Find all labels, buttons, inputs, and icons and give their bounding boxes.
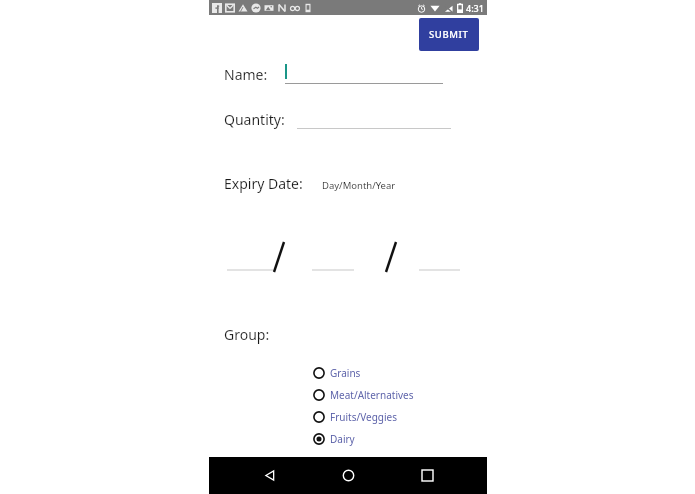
staticText: Name: [224,65,268,84]
staticText: Day/Month/Year [322,179,396,192]
button[interactable] [419,239,460,273]
staticText: Fruits/Veggies [330,410,397,424]
staticText: Dairy [330,432,355,446]
button[interactable]: Fruits/Veggies [209,406,487,428]
button[interactable]: Dairy [209,428,487,450]
button[interactable]: Home [329,457,367,494]
button[interactable]: SUBMIT [419,18,479,51]
staticText: Meat/Alternatives [330,388,414,402]
button[interactable]: Meat/Alternatives [209,384,487,406]
button[interactable] [227,239,273,273]
staticText: Quantity: [224,110,285,129]
staticText: 4:31 [466,2,484,14]
staticText: Expiry Date: [224,174,303,193]
button[interactable]: Grains [209,362,487,384]
staticText: SUBMIT [429,28,469,41]
button[interactable]: Recent apps [408,457,446,494]
button[interactable] [285,62,443,84]
staticText: Group: [224,325,270,344]
staticText: Grains [330,366,361,380]
button[interactable] [297,107,451,129]
button[interactable] [312,239,354,273]
button[interactable]: Back [250,457,288,494]
